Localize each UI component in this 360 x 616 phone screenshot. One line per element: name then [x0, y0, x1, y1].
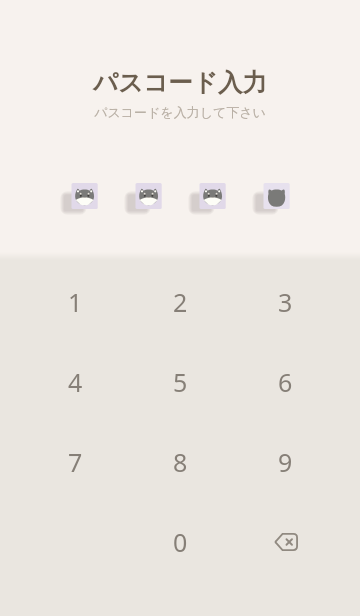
button[interactable]: Backspace — [233, 502, 338, 582]
button[interactable]: 2 — [128, 262, 233, 342]
staticText: 7 — [68, 445, 83, 479]
button[interactable]: 8 — [128, 422, 233, 502]
staticText: 5 — [173, 365, 188, 399]
staticText: 9 — [278, 445, 293, 479]
staticText: 3 — [278, 285, 293, 319]
button[interactable]: 7 — [23, 422, 128, 502]
staticText: 8 — [173, 445, 188, 479]
staticText: 0 — [173, 525, 188, 559]
button[interactable]: 3 — [233, 262, 338, 342]
button[interactable]: 4 — [23, 342, 128, 422]
staticText: 1 — [68, 285, 83, 319]
button[interactable]: 5 — [128, 342, 233, 422]
staticText: パスコード入力 — [93, 67, 267, 98]
staticText: パスコードを入力して下さい — [94, 104, 266, 120]
staticText: 2 — [173, 285, 188, 319]
button[interactable]: 6 — [233, 342, 338, 422]
button[interactable]: 0 — [128, 502, 233, 582]
staticText: 6 — [278, 365, 293, 399]
button[interactable]: 9 — [233, 422, 338, 502]
staticText: 4 — [68, 365, 83, 399]
button[interactable]: 1 — [23, 262, 128, 342]
